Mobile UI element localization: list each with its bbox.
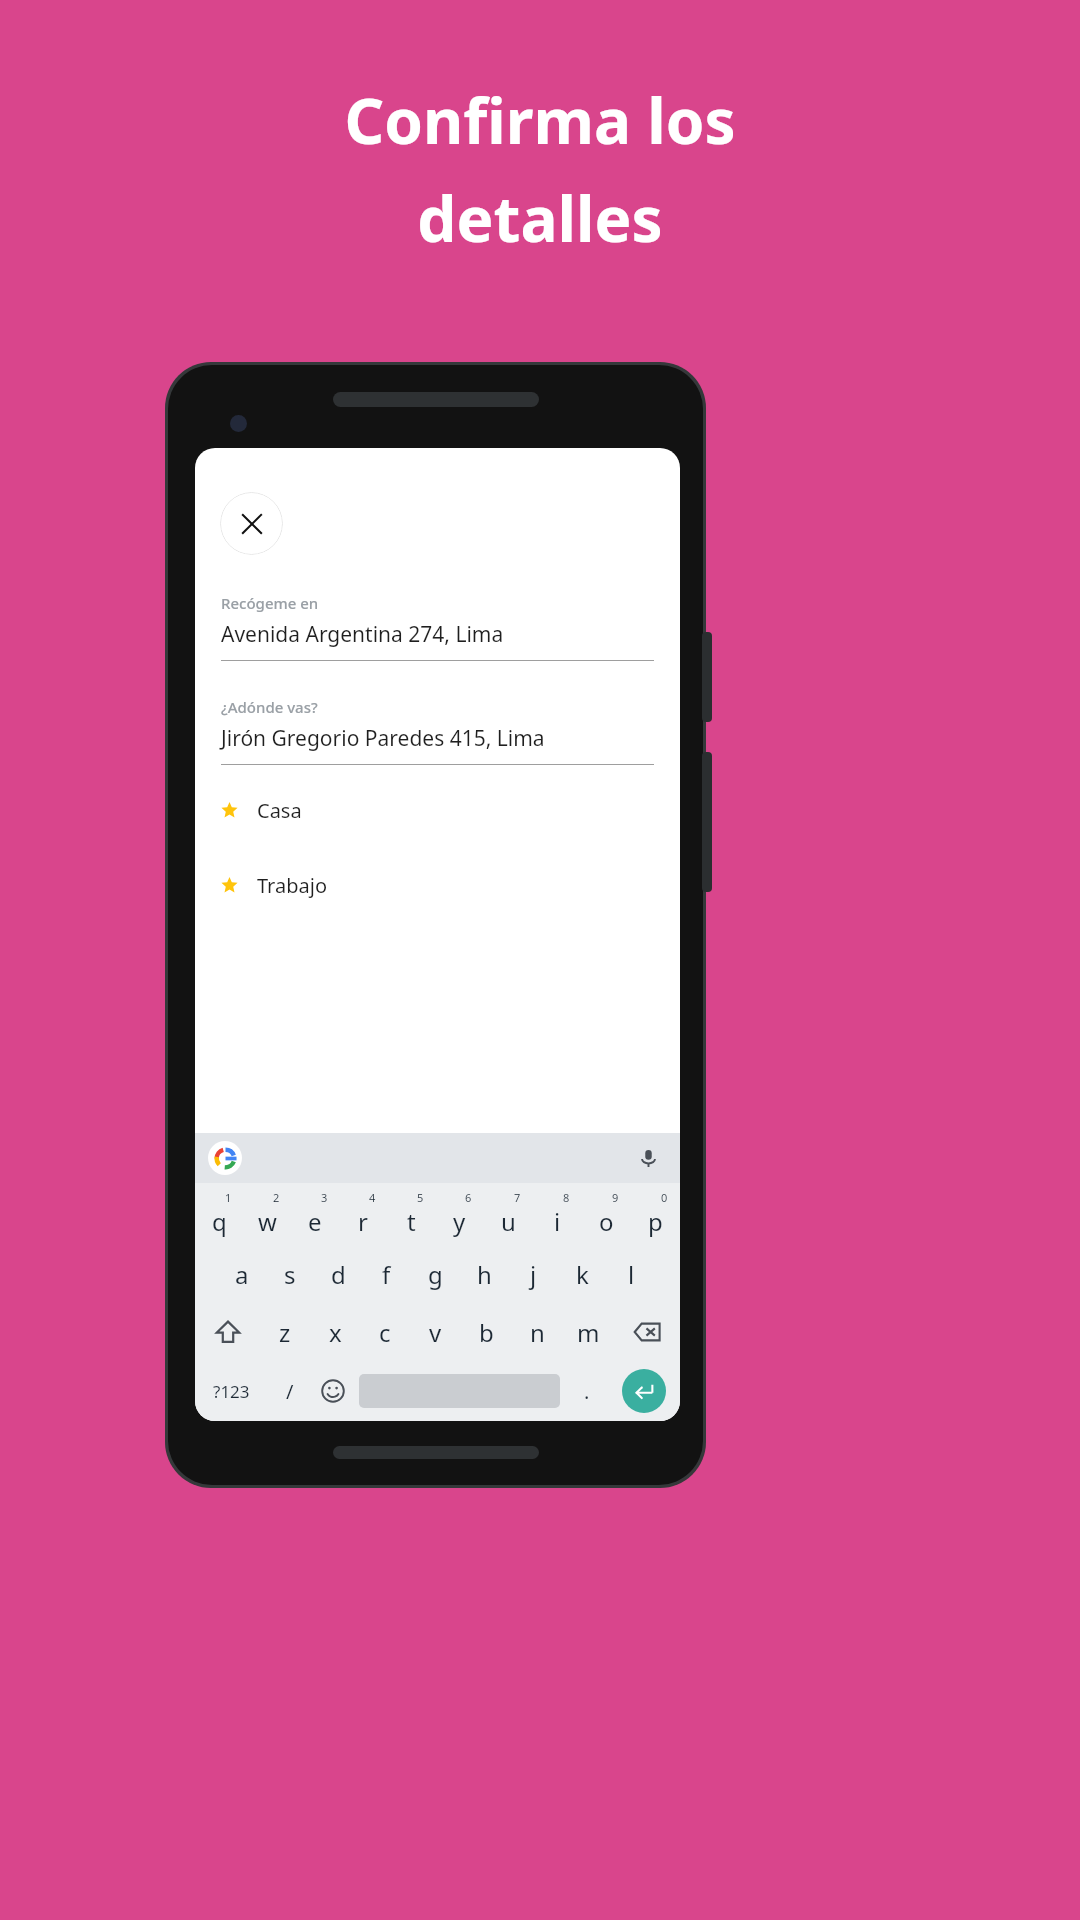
button[interactable]: l [607,1245,656,1303]
staticText: Trabajo [257,872,327,899]
staticText: Casa [257,797,302,824]
staticText: g [428,1258,443,1291]
staticText: d [331,1258,346,1291]
staticText: ¿Adónde vas? [221,697,318,717]
staticText: 4 [369,1190,376,1205]
button[interactable]: b [461,1303,512,1361]
staticText: p [648,1205,663,1238]
staticText: y [453,1205,466,1238]
staticText: x [329,1316,342,1349]
button[interactable]: g [411,1245,460,1303]
button[interactable]: ?123 [195,1361,268,1421]
staticText: 2 [273,1190,280,1205]
staticText: w [258,1205,277,1238]
button[interactable]: 6 [435,1183,484,1245]
button[interactable]: h [460,1245,509,1303]
button[interactable]: m [563,1303,614,1361]
staticText: Jirón Gregorio Paredes 415, Lima [221,724,545,753]
button[interactable]: . [565,1361,608,1421]
button[interactable]: 7 [484,1183,533,1245]
staticText: Recógeme en [221,593,319,613]
staticText: e [308,1205,322,1238]
button[interactable]: a [218,1245,266,1303]
staticText: u [501,1205,516,1238]
button[interactable]: / [268,1361,311,1421]
button[interactable]: 5 [387,1183,435,1245]
staticText: v [429,1316,442,1349]
staticText: s [284,1258,296,1291]
button[interactable]: Emoji [311,1361,354,1421]
staticText: 0 [661,1190,668,1205]
button[interactable]: s [266,1245,314,1303]
staticText: m [577,1316,600,1349]
button[interactable]: k [558,1245,607,1303]
button[interactable]: Intro [622,1369,666,1413]
staticText: 9 [612,1190,619,1205]
staticText: r [358,1205,368,1238]
staticText: 1 [225,1190,232,1205]
staticText: n [530,1316,545,1349]
button[interactable]: 4 [339,1183,387,1245]
staticText: Confirma los [344,78,736,162]
button[interactable]: Recógeme en [221,593,654,661]
button[interactable]: 2 [243,1183,291,1245]
staticText: l [628,1258,635,1291]
button[interactable]: c [360,1303,410,1361]
staticText: f [382,1258,391,1291]
button[interactable]: x [310,1303,360,1361]
staticText: k [576,1258,589,1291]
staticText: c [379,1316,391,1349]
staticText: q [212,1205,227,1238]
button[interactable]: 1 [195,1183,243,1245]
button[interactable]: Mayúsculas [195,1303,260,1361]
staticText: detalles [417,176,663,260]
button[interactable]: Cerrar [220,492,283,555]
button[interactable]: 3 [291,1183,339,1245]
button[interactable]: Google [208,1141,242,1175]
staticText: 5 [417,1190,424,1205]
button[interactable]: d [314,1245,362,1303]
button[interactable]: n [512,1303,563,1361]
staticText: 3 [321,1190,328,1205]
staticText: j [530,1258,537,1291]
button[interactable]: 0 [631,1183,680,1245]
staticText: o [599,1205,614,1238]
button[interactable]: z [260,1303,310,1361]
staticText: . [584,1378,590,1405]
button[interactable]: f [362,1245,411,1303]
staticText: ?123 [213,1380,250,1403]
staticText: h [477,1258,492,1291]
staticText: 8 [563,1190,570,1205]
button[interactable]: Dictado por voz [633,1143,663,1173]
button[interactable]: Retroceso [614,1303,680,1361]
staticText: i [554,1205,561,1238]
button[interactable]: Trabajo [221,872,654,899]
button[interactable]: v [410,1303,461,1361]
button[interactable]: 9 [582,1183,631,1245]
staticText: / [286,1378,294,1405]
button[interactable]: Casa [221,797,654,824]
staticText: Avenida Argentina 274, Lima [221,620,504,649]
button[interactable]: ¿Adónde vas? [221,697,654,765]
staticText: z [279,1316,291,1349]
staticText: b [479,1316,494,1349]
button[interactable]: j [509,1245,558,1303]
staticText: a [235,1258,249,1291]
staticText: 6 [465,1190,472,1205]
staticText: 7 [514,1190,521,1205]
staticText: t [407,1205,416,1238]
button[interactable]: 8 [533,1183,582,1245]
